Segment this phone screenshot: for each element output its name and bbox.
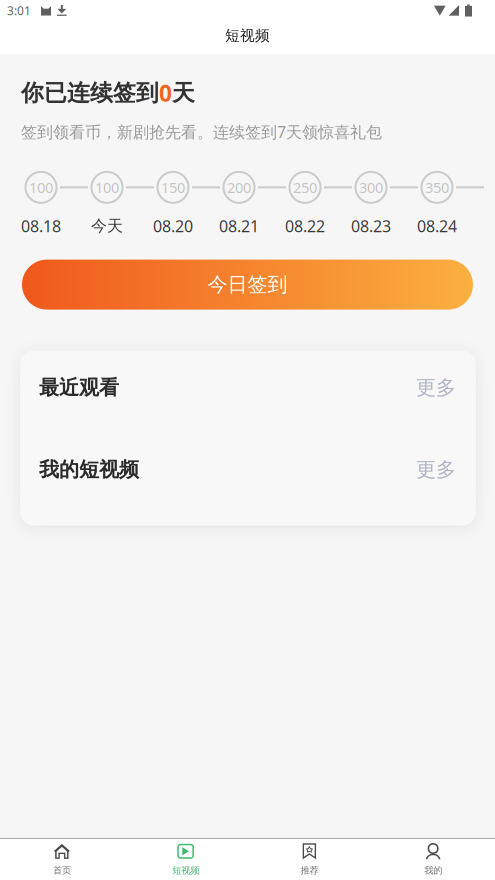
staticText: 我的: [424, 865, 442, 876]
staticText: 首页: [53, 865, 71, 876]
staticText: 08.18: [21, 215, 61, 236]
staticText: 短视频: [172, 865, 199, 876]
staticText: 100: [95, 178, 119, 197]
staticText: 200: [227, 178, 251, 197]
staticText: 今天: [91, 216, 123, 236]
staticText: 更多: [416, 457, 456, 482]
staticText: 350: [425, 178, 449, 197]
staticText: 300: [359, 178, 383, 197]
staticText: 天: [172, 79, 195, 107]
staticText: 100: [29, 178, 53, 197]
staticText: 08.21: [219, 215, 259, 236]
staticText: 更多: [416, 375, 456, 400]
staticText: 0: [159, 78, 172, 108]
staticText: 3:01: [7, 2, 31, 18]
staticText: 你已连续签到: [21, 79, 159, 107]
button[interactable]: 首页: [0, 839, 124, 880]
staticText: 我的短视频: [39, 457, 139, 482]
staticText: 短视频: [225, 26, 270, 44]
button[interactable]: 推荐: [247, 839, 371, 880]
staticText: 最近观看: [39, 375, 119, 400]
button[interactable]: 短视频: [124, 839, 248, 880]
staticText: 签到领看币，新剧抢先看。连续签到7天领惊喜礼包: [21, 121, 382, 142]
button[interactable]: 最近观看: [20, 351, 476, 425]
staticText: 150: [161, 178, 185, 197]
staticText: 08.24: [417, 215, 457, 236]
staticText: 08.22: [285, 215, 325, 236]
staticText: 08.23: [351, 215, 391, 236]
staticText: 08.20: [153, 215, 193, 236]
staticText: 250: [293, 178, 317, 197]
button[interactable]: 今日签到: [22, 260, 473, 310]
button[interactable]: 我的短视频: [20, 425, 476, 515]
staticText: 今日签到: [207, 272, 287, 297]
button[interactable]: 我的: [371, 839, 495, 880]
staticText: 推荐: [300, 865, 318, 876]
